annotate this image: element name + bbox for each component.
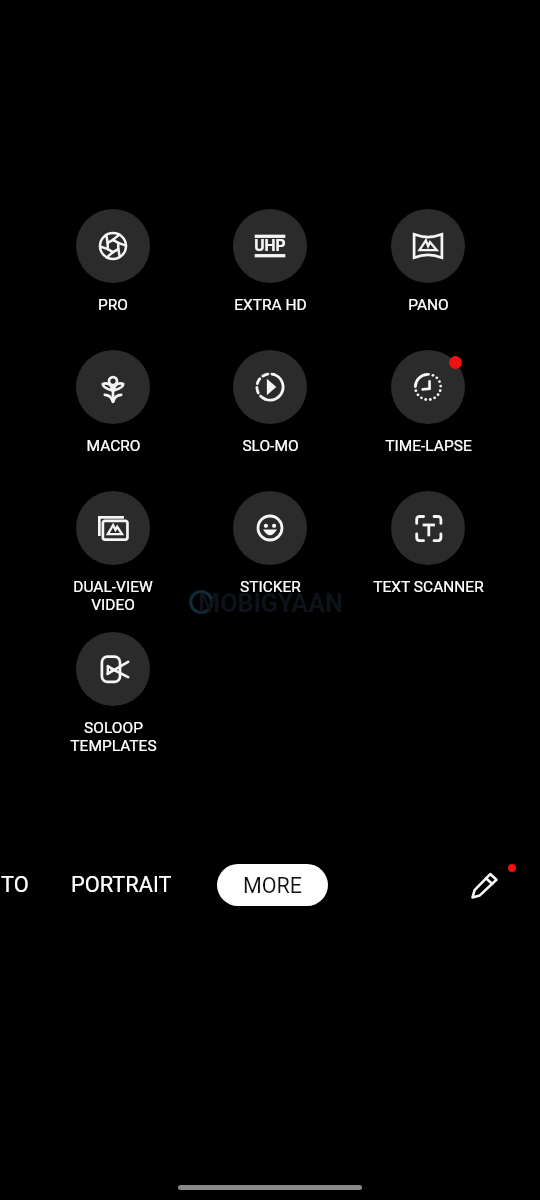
staticText: TIME-LAPSE bbox=[385, 437, 472, 455]
staticText: TEXT SCANNER bbox=[373, 578, 484, 596]
button[interactable]: Slo-mo bbox=[233, 346, 307, 424]
staticText: PORTRAIT bbox=[71, 872, 172, 898]
staticText: EXTRA HD bbox=[234, 296, 307, 314]
staticText: SLO-MO bbox=[242, 437, 299, 455]
staticText: SOLOOP bbox=[84, 719, 143, 737]
staticText: MOBIGYAAN bbox=[198, 589, 343, 615]
button[interactable]: MORE bbox=[217, 864, 328, 906]
button[interactable]: PRO bbox=[76, 205, 150, 283]
staticText: PANO bbox=[408, 296, 449, 314]
button[interactable]: Dual-view video bbox=[76, 487, 150, 565]
button[interactable]: PORTRAIT bbox=[61, 864, 181, 906]
button[interactable]: Extra HD bbox=[233, 205, 307, 283]
staticText: STICKER bbox=[240, 578, 301, 596]
staticText: MORE bbox=[243, 873, 303, 898]
staticText: UHP bbox=[254, 237, 286, 255]
staticText: MACRO bbox=[86, 437, 141, 455]
button[interactable]: Time-lapse bbox=[391, 346, 465, 424]
button[interactable]: Pano bbox=[391, 205, 465, 283]
button[interactable]: PHOTO bbox=[0, 864, 42, 906]
button[interactable]: Macro bbox=[76, 346, 150, 424]
button[interactable]: Soloop templates bbox=[76, 628, 150, 706]
button[interactable]: Text scanner bbox=[391, 487, 465, 565]
staticText: PHOTO bbox=[0, 872, 29, 898]
staticText: PRO bbox=[98, 296, 128, 314]
staticText: VIDEO bbox=[91, 596, 135, 614]
button[interactable]: Edit modes bbox=[463, 863, 507, 907]
staticText: DUAL-VIEW bbox=[73, 578, 153, 596]
staticText: TEMPLATES bbox=[70, 737, 157, 755]
button[interactable]: Sticker bbox=[233, 487, 307, 565]
